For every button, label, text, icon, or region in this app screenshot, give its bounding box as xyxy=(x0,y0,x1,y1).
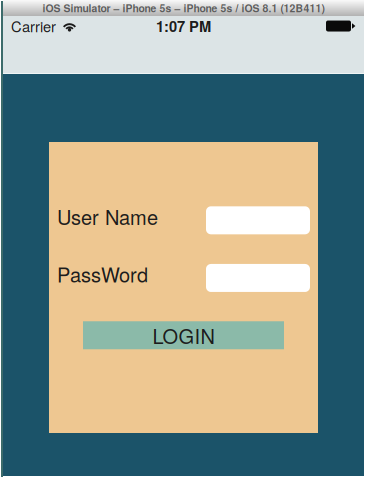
staticText: 1:07 PM xyxy=(156,15,211,36)
staticText: PassWord xyxy=(57,260,148,288)
staticText: LOGIN xyxy=(152,321,214,350)
button[interactable]: User Name xyxy=(206,206,310,234)
staticText: iOS Simulator – iPhone 5s – iPhone 5s / … xyxy=(42,1,324,15)
button[interactable]: PassWord xyxy=(206,264,310,292)
staticText: Carrier xyxy=(11,15,56,36)
staticText: User Name xyxy=(57,202,158,231)
button[interactable]: LOGIN xyxy=(83,321,284,349)
